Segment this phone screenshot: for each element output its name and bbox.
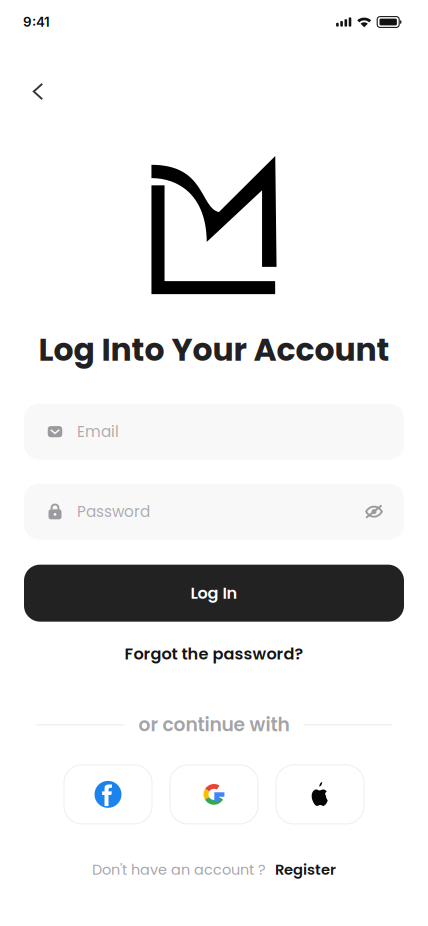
- staticText: Don't have an account ?: [92, 860, 266, 880]
- button[interactable]: Forgot the password?: [114, 636, 313, 672]
- button[interactable]: Continue with Facebook: [64, 765, 152, 824]
- button[interactable]: Email: [24, 404, 404, 460]
- button[interactable]: Back: [23, 76, 53, 106]
- staticText: Password: [77, 501, 150, 522]
- button[interactable]: Register: [266, 854, 336, 885]
- button[interactable]: Continue with Google: [170, 765, 258, 824]
- staticText: Log In: [190, 582, 237, 604]
- staticText: Forgot the password?: [124, 643, 303, 665]
- staticText: or continue with: [138, 712, 289, 738]
- staticText: 9:41: [23, 14, 50, 30]
- button[interactable]: Log In: [24, 565, 404, 622]
- button[interactable]: Password: [24, 484, 404, 540]
- staticText: Log Into Your Account: [38, 328, 389, 372]
- staticText: Email: [77, 421, 119, 442]
- staticText: Register: [275, 859, 336, 880]
- button[interactable]: Continue with Apple: [276, 765, 364, 824]
